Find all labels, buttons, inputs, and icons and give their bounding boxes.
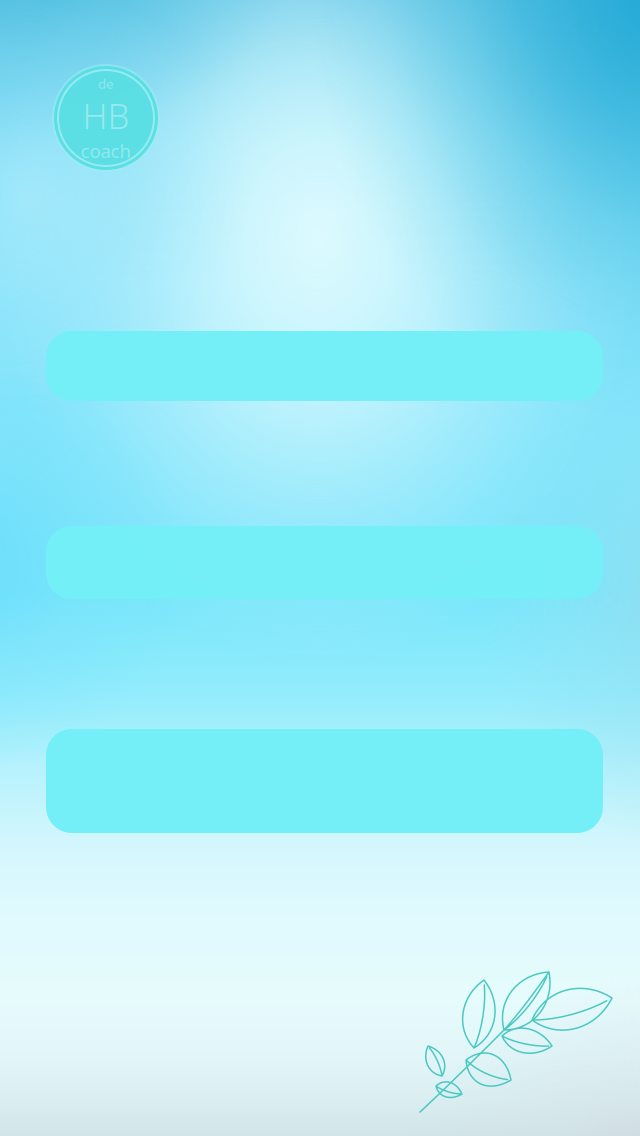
button[interactable]: Option three (46, 729, 603, 833)
button[interactable]: HB coach (50, 62, 162, 174)
staticText: coach (80, 138, 131, 163)
staticText: HB (82, 92, 129, 138)
staticText: de (98, 75, 114, 92)
